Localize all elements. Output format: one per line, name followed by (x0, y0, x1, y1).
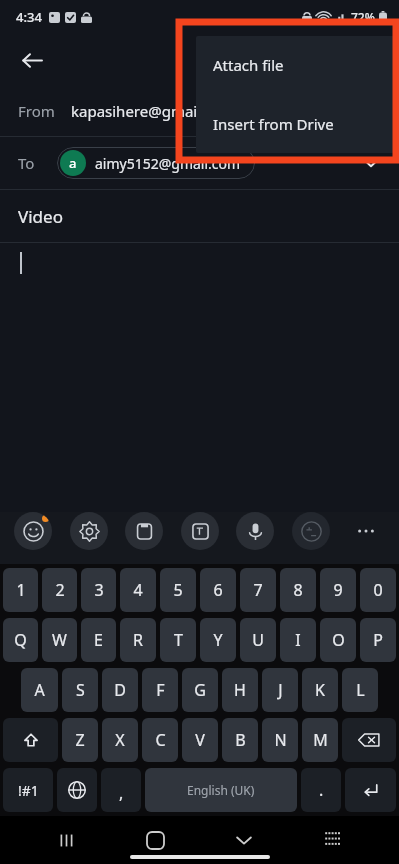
staticText: kapasihere@gmail.com (71, 101, 236, 121)
staticText: Q (14, 629, 27, 651)
button[interactable]: Clipboard (125, 512, 163, 550)
button[interactable]: Back (10, 38, 54, 82)
button[interactable]: C (142, 718, 178, 762)
staticText: S (76, 679, 85, 701)
staticText: G (194, 679, 206, 701)
button[interactable]: 4 (120, 568, 156, 612)
staticText: F (156, 679, 165, 701)
staticText: !#1 (18, 781, 39, 800)
staticText: From (18, 101, 55, 121)
button[interactable]: More options (347, 512, 385, 550)
button[interactable]: 5 (160, 568, 196, 612)
staticText: 9 (333, 579, 343, 601)
button[interactable]: Enter (345, 768, 396, 812)
staticText: L (356, 679, 365, 701)
button[interactable]: 1 (3, 568, 38, 612)
button[interactable]: Recents (43, 817, 89, 863)
button[interactable]: Y (200, 618, 236, 662)
staticText: 72% (351, 9, 375, 25)
staticText: W (52, 629, 67, 651)
button[interactable]: Voice input (236, 512, 274, 550)
staticText: Attach file (213, 55, 284, 75)
staticText: R (133, 629, 143, 651)
button[interactable]: 7 (240, 568, 276, 612)
button[interactable]: F (142, 668, 178, 712)
button[interactable]: Emoji (14, 512, 52, 550)
button[interactable]: O (320, 618, 356, 662)
button[interactable]: a (57, 147, 255, 179)
button[interactable]: Translate (292, 512, 330, 550)
button[interactable]: T (160, 618, 196, 662)
button[interactable] (0, 243, 399, 283)
staticText: , (119, 782, 124, 804)
staticText: aimy5152@gmail.com (95, 154, 241, 173)
button[interactable]: 2 (42, 568, 77, 612)
staticText: Insert from Drive (213, 114, 334, 134)
staticText: 4 (133, 579, 143, 601)
button[interactable]: V (182, 718, 218, 762)
button[interactable]: M (302, 718, 338, 762)
staticText: C (155, 729, 166, 751)
staticText: Video (18, 205, 63, 228)
staticText: Y (213, 629, 223, 651)
button[interactable]: D (102, 668, 138, 712)
button[interactable]: Z (62, 718, 98, 762)
button[interactable]: 9 (320, 568, 356, 612)
button[interactable]: Settings (70, 512, 108, 550)
button[interactable]: I (280, 618, 316, 662)
staticText: E (94, 629, 103, 651)
button[interactable]: Attach file (196, 36, 394, 94)
button[interactable]: To (0, 137, 399, 189)
button[interactable]: Video (0, 190, 399, 242)
staticText: 1 (16, 579, 26, 601)
button[interactable]: U (240, 618, 276, 662)
button[interactable]: W (42, 618, 77, 662)
button[interactable]: J (262, 668, 298, 712)
button[interactable]: Insert from Drive (196, 94, 394, 153)
button[interactable]: !#1 (3, 768, 53, 812)
button[interactable]: K (302, 668, 338, 712)
button[interactable]: L (342, 668, 378, 712)
button[interactable]: English (UK) (145, 768, 297, 812)
button[interactable]: Q (3, 618, 38, 662)
button[interactable]: H (222, 668, 258, 712)
button[interactable]: X (102, 718, 138, 762)
button[interactable]: Home (132, 817, 178, 863)
button[interactable]: Backspace (342, 718, 396, 762)
button[interactable]: From (0, 86, 399, 136)
button[interactable]: 6 (200, 568, 236, 612)
staticText: 2 (55, 579, 65, 601)
button[interactable]: Expand recipients (351, 143, 391, 183)
staticText: K (315, 679, 325, 701)
button[interactable]: Hide keyboard (221, 817, 267, 863)
staticText: T (174, 629, 183, 651)
button[interactable]: Text editing (181, 512, 219, 550)
staticText: a (69, 154, 77, 172)
staticText: U (252, 629, 264, 651)
staticText: P (373, 629, 383, 651)
button[interactable]: 8 (280, 568, 316, 612)
button[interactable]: , (101, 768, 141, 812)
button[interactable]: A (21, 668, 58, 712)
staticText: 7 (253, 579, 263, 601)
staticText: 0 (373, 579, 383, 601)
staticText: H (234, 679, 246, 701)
staticText: To (18, 153, 35, 173)
button[interactable]: . (301, 768, 341, 812)
button[interactable]: Shift (3, 718, 58, 762)
button[interactable]: Switch keyboard (310, 817, 356, 863)
button[interactable]: E (81, 618, 116, 662)
button[interactable]: N (262, 718, 298, 762)
staticText: 6 (213, 579, 223, 601)
button[interactable]: Change language (57, 768, 97, 812)
button[interactable]: B (222, 718, 258, 762)
button[interactable]: P (360, 618, 396, 662)
staticText: J (278, 679, 283, 701)
button[interactable]: R (120, 618, 156, 662)
staticText: X (115, 729, 125, 751)
button[interactable]: S (62, 668, 98, 712)
button[interactable]: G (182, 668, 218, 712)
button[interactable]: 3 (81, 568, 116, 612)
staticText: 5 (173, 579, 183, 601)
button[interactable]: 0 (360, 568, 396, 612)
